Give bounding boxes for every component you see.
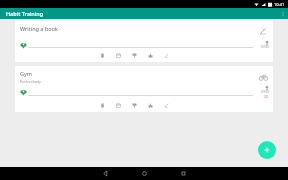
button[interactable]: Dislike (129, 50, 139, 60)
button[interactable]: Edit (161, 100, 171, 110)
staticText: Perfect body (20, 79, 41, 84)
button[interactable]: Edit habit (257, 25, 269, 37)
staticText: 0/100 (261, 90, 269, 94)
staticText: Writing a book (20, 25, 58, 32)
button[interactable]: Activity type (257, 70, 269, 82)
button[interactable]: Like (145, 100, 155, 110)
staticText: 25 (264, 94, 269, 99)
button[interactable]: Writing a book (15, 21, 273, 62)
staticText: Gym (20, 70, 32, 77)
button[interactable]: Recent apps (177, 167, 190, 180)
button[interactable]: Back (99, 167, 112, 180)
staticText: 10:41 (274, 2, 285, 7)
button[interactable]: Schedule (113, 50, 123, 60)
button[interactable]: Home (138, 167, 151, 180)
staticText: 0/100 (261, 45, 269, 49)
button[interactable]: Like (145, 50, 155, 60)
button[interactable]: Schedule (113, 100, 123, 110)
button[interactable]: Add habit (258, 141, 276, 159)
button[interactable]: Dislike (129, 100, 139, 110)
button[interactable]: Edit (161, 50, 171, 60)
staticText: Habit Training (6, 10, 44, 17)
button[interactable]: Gym (15, 66, 273, 112)
button[interactable]: Delete (97, 50, 107, 60)
button[interactable]: Delete (97, 100, 107, 110)
button[interactable]: More options (277, 8, 288, 19)
